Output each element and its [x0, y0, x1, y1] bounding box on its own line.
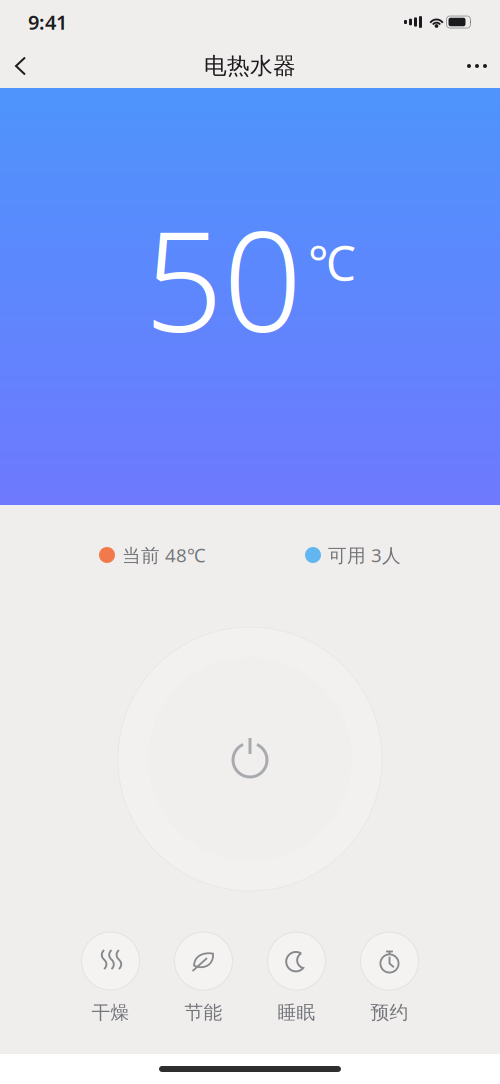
- button[interactable]: 节能: [164, 932, 242, 1024]
- staticText: 电热水器: [204, 52, 296, 80]
- button[interactable]: More: [454, 44, 500, 87]
- staticText: ℃: [308, 230, 356, 294]
- button[interactable]: 干燥: [71, 932, 149, 1024]
- staticText: 睡眠: [277, 1001, 315, 1024]
- staticText: 预约: [370, 1001, 408, 1024]
- staticText: 50: [144, 186, 302, 370]
- button[interactable]: 预约: [350, 932, 428, 1024]
- staticText: 干燥: [91, 1001, 129, 1024]
- staticText: 9:41: [28, 9, 67, 35]
- staticText: 可用 3人: [328, 543, 401, 567]
- button[interactable]: Back: [0, 44, 41, 87]
- staticText: 当前 48℃: [122, 543, 206, 567]
- button[interactable]: 睡眠: [257, 932, 335, 1024]
- staticText: 节能: [184, 1001, 222, 1024]
